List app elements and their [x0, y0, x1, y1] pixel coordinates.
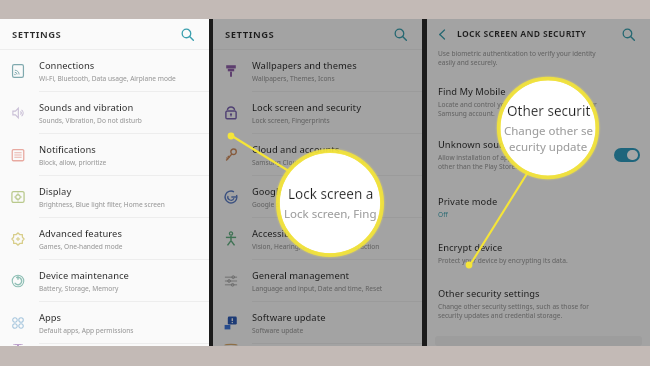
button[interactable]: Cloud and accounts: [213, 134, 422, 176]
staticText: Change other security settings, such as …: [438, 302, 589, 311]
staticText: General management: [252, 269, 350, 282]
button[interactable]: Toggle: [614, 148, 640, 162]
button[interactable]: Accessibility: [213, 218, 422, 260]
staticText: Lock screen and security: [252, 101, 362, 114]
staticText: other than the Play Store.: [438, 162, 517, 171]
button[interactable]: Back: [433, 25, 451, 43]
button[interactable]: Encrypt device: [427, 234, 650, 272]
button[interactable]: Lock screen and security: [213, 92, 422, 134]
button[interactable]: Other security settings: [427, 280, 650, 327]
staticText: Software update: [252, 326, 304, 335]
staticText: Display: [39, 185, 72, 198]
button[interactable]: Device maintenance: [0, 260, 209, 302]
staticText: Change other se: [504, 123, 593, 139]
staticText: Wi-Fi, Bluetooth, Data usage, Airplane m…: [39, 74, 176, 83]
staticText: Protect your device by encrypting its da…: [438, 256, 568, 265]
staticText: Accessibility: [252, 227, 306, 240]
button[interactable]: Search: [177, 24, 197, 44]
staticText: Language and input, Date and time, Reset: [252, 284, 383, 293]
staticText: Off: [438, 210, 448, 219]
button[interactable]: Apps: [0, 302, 209, 344]
staticText: Samsung account.: [438, 109, 495, 118]
staticText: Software update: [252, 311, 326, 324]
button[interactable]: Find My Mobile: [427, 78, 650, 125]
button[interactable]: Google: [213, 176, 422, 218]
staticText: LOCK SCREEN AND SECURITY: [457, 28, 587, 40]
button[interactable]: Connections: [0, 50, 209, 92]
staticText: Brightness, Blue light filter, Home scre…: [39, 200, 165, 209]
button[interactable]: Advanced features: [0, 218, 209, 260]
staticText: Vision, Hearing, Dexterity and interacti…: [252, 242, 380, 251]
button[interactable]: Private mode: [427, 188, 650, 226]
staticText: Unknown sources: [438, 138, 518, 151]
staticText: Battery, Storage, Memory: [39, 284, 119, 293]
staticText: security updates and credential storage.: [438, 311, 563, 320]
button[interactable]: Unknown sources: [427, 131, 650, 178]
staticText: Device maintenance: [39, 269, 129, 282]
staticText: ecurity update: [509, 139, 588, 155]
staticText: Sounds and vibration: [39, 101, 134, 114]
staticText: Lock screen a: [288, 185, 374, 203]
button[interactable]: Help: [213, 344, 422, 346]
staticText: Samsung Cloud, Backup and restore: [252, 158, 365, 167]
staticText: Block, allow, prioritize: [39, 158, 107, 167]
staticText: Allow installation of apps from sources: [438, 153, 558, 162]
staticText: Google settings: [252, 200, 301, 209]
staticText: Other security settings: [438, 287, 540, 300]
staticText: Other securit: [507, 102, 591, 120]
button[interactable]: Wallpapers and themes: [0, 344, 209, 346]
button[interactable]: Software update: [213, 302, 422, 344]
staticText: Cloud and accounts: [252, 143, 340, 156]
staticText: SETTINGS: [12, 28, 62, 41]
staticText: Wallpapers, Themes, Icons: [252, 74, 335, 83]
staticText: Lock screen, Fing: [284, 206, 377, 222]
button[interactable]: Wallpapers and themes: [213, 50, 422, 92]
button[interactable]: Notifications: [0, 134, 209, 176]
button[interactable]: Display: [0, 176, 209, 218]
staticText: Default apps, App permissions: [39, 326, 134, 335]
staticText: Games, One-handed mode: [39, 242, 123, 251]
staticText: Apps: [39, 311, 62, 324]
staticText: Advanced features: [39, 227, 122, 240]
button[interactable]: General management: [213, 260, 422, 302]
staticText: Encrypt device: [438, 241, 503, 254]
staticText: easily and securely.: [438, 58, 498, 67]
staticText: Google: [252, 185, 284, 198]
button[interactable]: Sounds and vibration: [0, 92, 209, 134]
staticText: Lock screen, Fingerprints: [252, 116, 330, 125]
staticText: Private mode: [438, 195, 498, 208]
button[interactable]: Search: [618, 24, 638, 44]
button[interactable]: Search: [390, 24, 410, 44]
staticText: Locate and control your device remotely …: [438, 100, 597, 109]
staticText: Wallpapers and themes: [252, 59, 357, 72]
staticText: SETTINGS: [225, 28, 275, 41]
staticText: Sounds, Vibration, Do not disturb: [39, 116, 142, 125]
staticText: Find My Mobile: [438, 85, 506, 98]
staticText: Connections: [39, 59, 95, 72]
staticText: Notifications: [39, 143, 96, 156]
staticText: Use biometric authentication to verify y…: [438, 49, 596, 58]
